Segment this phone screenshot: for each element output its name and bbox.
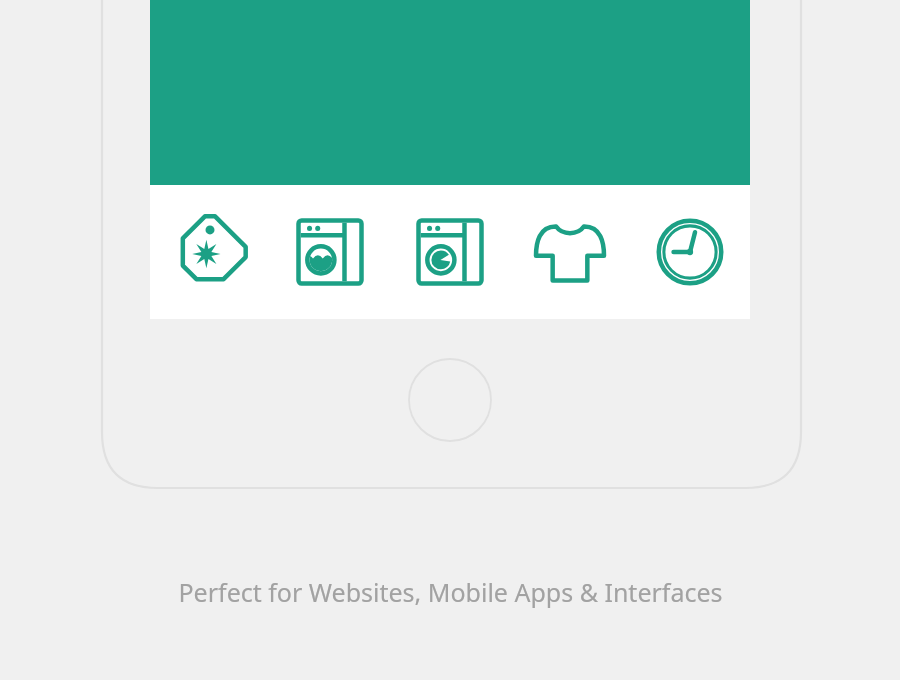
button[interactable]: Spin cycle [390,185,510,319]
button[interactable]: Timer [630,185,750,319]
staticText: Perfect for Websites, Mobile Apps & Inte… [178,575,723,609]
button[interactable]: Offers [150,185,270,319]
button[interactable]: Clothes [510,185,630,319]
button[interactable]: Wash cycle [270,185,390,319]
